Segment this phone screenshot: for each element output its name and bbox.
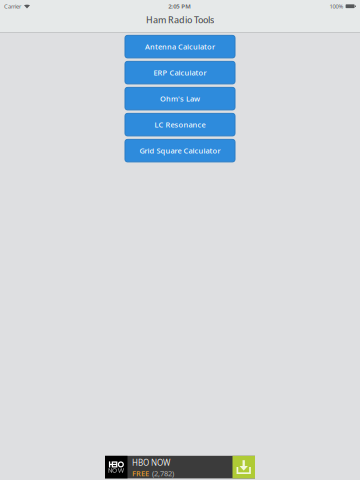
staticText: 2:05 PM — [168, 2, 191, 10]
staticText: Ohm's Law — [160, 94, 200, 104]
staticText: HBO NOW — [132, 457, 170, 468]
button[interactable]: HBO NOW — [105, 456, 255, 478]
staticText: (2,782) — [152, 468, 174, 478]
staticText: LC Resonance — [154, 120, 205, 130]
staticText: Carrier — [4, 2, 21, 10]
button[interactable]: Antenna Calculator — [125, 35, 235, 58]
button[interactable]: Ohm's Law — [125, 87, 235, 110]
button[interactable]: Grid Square Calculator — [125, 139, 235, 162]
staticText: Grid Square Calculator — [139, 146, 220, 156]
staticText: FREE — [132, 468, 149, 478]
staticText: Ham Radio Tools — [146, 14, 214, 26]
staticText: Antenna Calculator — [145, 42, 215, 52]
staticText: ERP Calculator — [153, 68, 206, 78]
button[interactable]: LC Resonance — [125, 113, 235, 136]
button[interactable]: ERP Calculator — [125, 61, 235, 84]
staticText: 100% — [330, 2, 344, 10]
